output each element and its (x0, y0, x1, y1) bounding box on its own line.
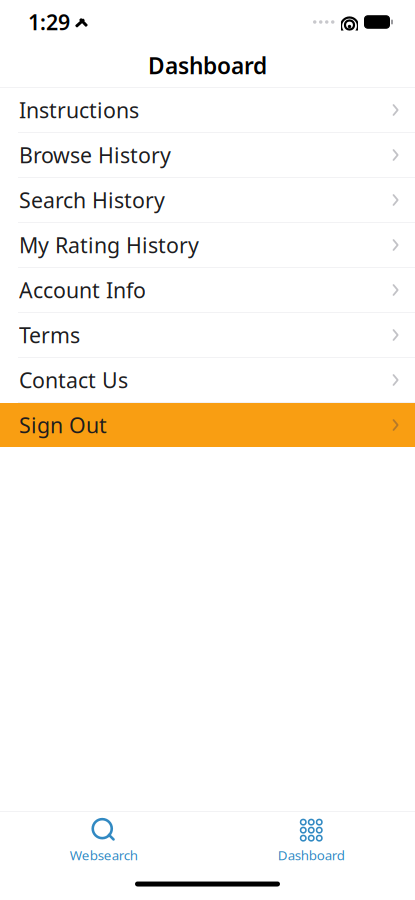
button[interactable]: Sign Out (0, 403, 415, 447)
staticText: Browse History (19, 141, 171, 169)
staticText: Instructions (19, 96, 139, 124)
button[interactable]: Dashboard (207, 814, 415, 866)
button[interactable]: My Rating History (0, 223, 415, 267)
staticText: Account Info (19, 276, 146, 304)
button[interactable]: Account Info (0, 268, 415, 312)
button[interactable]: Websearch (0, 814, 207, 866)
button[interactable]: Contact Us (0, 358, 415, 402)
staticText: My Rating History (19, 231, 199, 259)
button[interactable]: Terms (0, 313, 415, 357)
button[interactable]: Search History (0, 178, 415, 222)
staticText: Search History (19, 186, 165, 214)
staticText: Contact Us (19, 366, 128, 394)
button[interactable]: Browse History (0, 133, 415, 177)
staticText: Terms (19, 321, 80, 349)
button[interactable]: Instructions (0, 88, 415, 132)
staticText: Sign Out (19, 411, 107, 439)
staticText: 1:29 (28, 8, 70, 36)
staticText: Dashboard (278, 846, 345, 864)
staticText: Dashboard (148, 50, 267, 80)
staticText: Websearch (70, 846, 138, 864)
